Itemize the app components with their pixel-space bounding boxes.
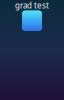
staticText: grad test (15, 0, 49, 11)
